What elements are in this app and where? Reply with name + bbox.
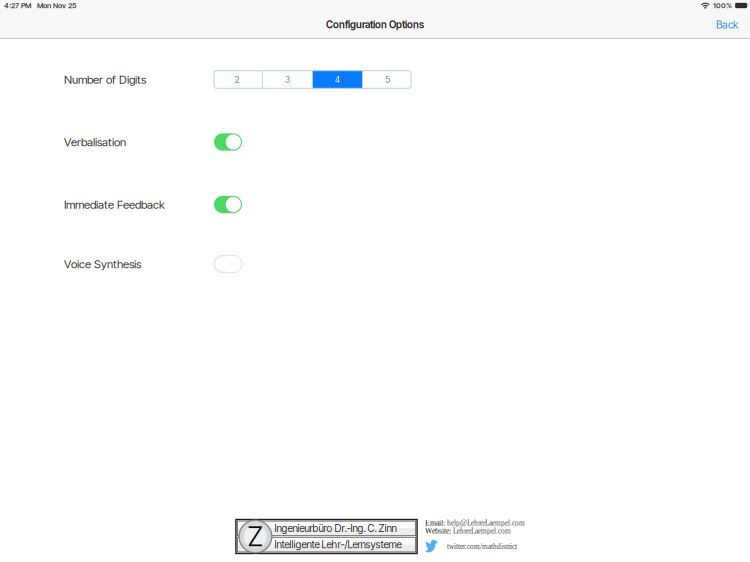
staticText: Intelligente Lehr-/Lernsysteme xyxy=(274,538,401,551)
staticText: help@LehrerLaempel.com xyxy=(447,519,525,527)
staticText: Number of Digits xyxy=(64,73,146,86)
button[interactable]: Disabled xyxy=(214,255,242,273)
staticText: 100% xyxy=(713,1,732,10)
staticText: Ingenieurbüro Dr.-Ing. C. Zinn xyxy=(274,522,396,535)
staticText: Mon Nov 25 xyxy=(37,1,76,10)
staticText: Back xyxy=(716,18,738,31)
button[interactable]: 5 xyxy=(363,71,412,88)
staticText: Configuration Options xyxy=(326,18,424,31)
staticText: Email: xyxy=(425,519,445,527)
button[interactable]: Enabled xyxy=(214,196,242,213)
staticText: Z xyxy=(247,520,263,553)
staticText: Verbalisation xyxy=(64,135,126,149)
button[interactable]: Back xyxy=(698,12,738,36)
button[interactable]: Enabled xyxy=(214,133,242,151)
staticText: Voice Synthesis xyxy=(64,257,141,271)
button[interactable]: 4 xyxy=(313,71,362,88)
staticText: 2 xyxy=(235,74,240,85)
button[interactable]: 2 xyxy=(213,71,262,88)
button[interactable]: 3 xyxy=(263,71,312,88)
staticText: 5 xyxy=(385,74,390,85)
staticText: 3 xyxy=(285,74,290,85)
staticText: Website: xyxy=(425,527,451,535)
staticText: LehrerLaempel.com xyxy=(453,527,511,535)
staticText: twitter.com/mathdistrict xyxy=(447,542,517,550)
staticText: 4:27 PM xyxy=(4,1,31,10)
staticText: 4 xyxy=(335,74,340,85)
staticText: Immediate Feedback xyxy=(64,198,165,211)
